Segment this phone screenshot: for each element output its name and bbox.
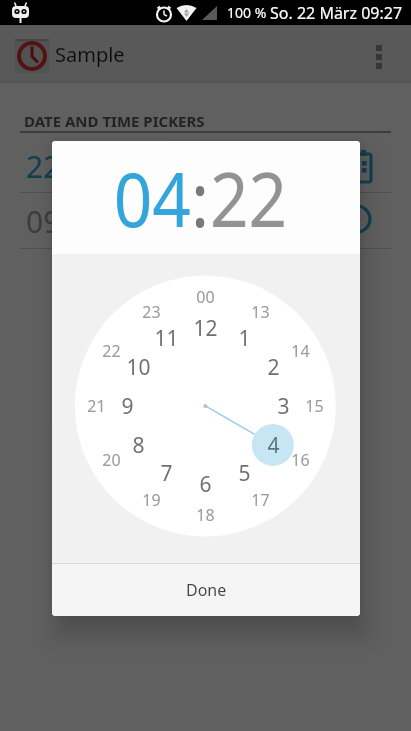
staticText: 16 xyxy=(291,449,310,471)
staticText: 3 xyxy=(277,392,290,421)
staticText: 00 xyxy=(196,286,215,308)
staticText: Done xyxy=(186,579,227,601)
staticText: 09:27 xyxy=(26,201,103,242)
staticText: 17 xyxy=(251,489,270,511)
staticText: 7 xyxy=(160,459,173,488)
staticText: 4 xyxy=(267,431,280,460)
button[interactable] xyxy=(0,193,411,248)
staticText: 15 xyxy=(305,395,324,417)
staticText: DATE AND TIME PICKERS xyxy=(24,111,205,131)
staticText: 9 xyxy=(121,392,134,421)
staticText: 14 xyxy=(291,340,310,362)
staticText: 12 xyxy=(193,314,218,343)
staticText: 22 xyxy=(210,147,287,249)
staticText: 11 xyxy=(154,324,179,353)
staticText: 8 xyxy=(132,431,145,460)
staticText: 2 xyxy=(267,353,280,382)
staticText: So. 22 März 09:27 xyxy=(270,2,403,24)
staticText: 5 xyxy=(238,459,251,488)
staticText: 10 xyxy=(126,353,151,382)
staticText: 13 xyxy=(251,301,270,323)
staticText: : xyxy=(191,147,210,249)
staticText: 20 xyxy=(102,449,121,471)
staticText: 22.03.2015 xyxy=(26,146,180,187)
button[interactable]: Done xyxy=(52,564,360,616)
staticText: 18 xyxy=(196,504,215,526)
button[interactable] xyxy=(376,45,382,69)
staticText: 21 xyxy=(87,395,106,417)
staticText: 100 % xyxy=(227,3,267,22)
staticText: 19 xyxy=(142,489,161,511)
staticText: 6 xyxy=(199,470,212,499)
staticText: 22 xyxy=(102,340,121,362)
staticText: 23 xyxy=(142,301,161,323)
button[interactable] xyxy=(0,132,411,191)
staticText: Sample xyxy=(55,41,125,68)
staticText: 04 xyxy=(114,147,191,249)
staticText: 1 xyxy=(238,324,251,353)
